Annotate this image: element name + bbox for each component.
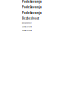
- staticText: Bezbednost: [22, 22, 32, 24]
- staticText: Zaključavanje: [22, 26, 32, 28]
- staticText: Podešavanja: [22, 5, 42, 9]
- staticText: Bezbednost: [22, 17, 39, 20]
- staticText: Podešavanja: [22, 11, 42, 15]
- staticText: Zaključavanje: [22, 30, 32, 31]
- staticText: Podešavanja: [22, 0, 42, 3]
